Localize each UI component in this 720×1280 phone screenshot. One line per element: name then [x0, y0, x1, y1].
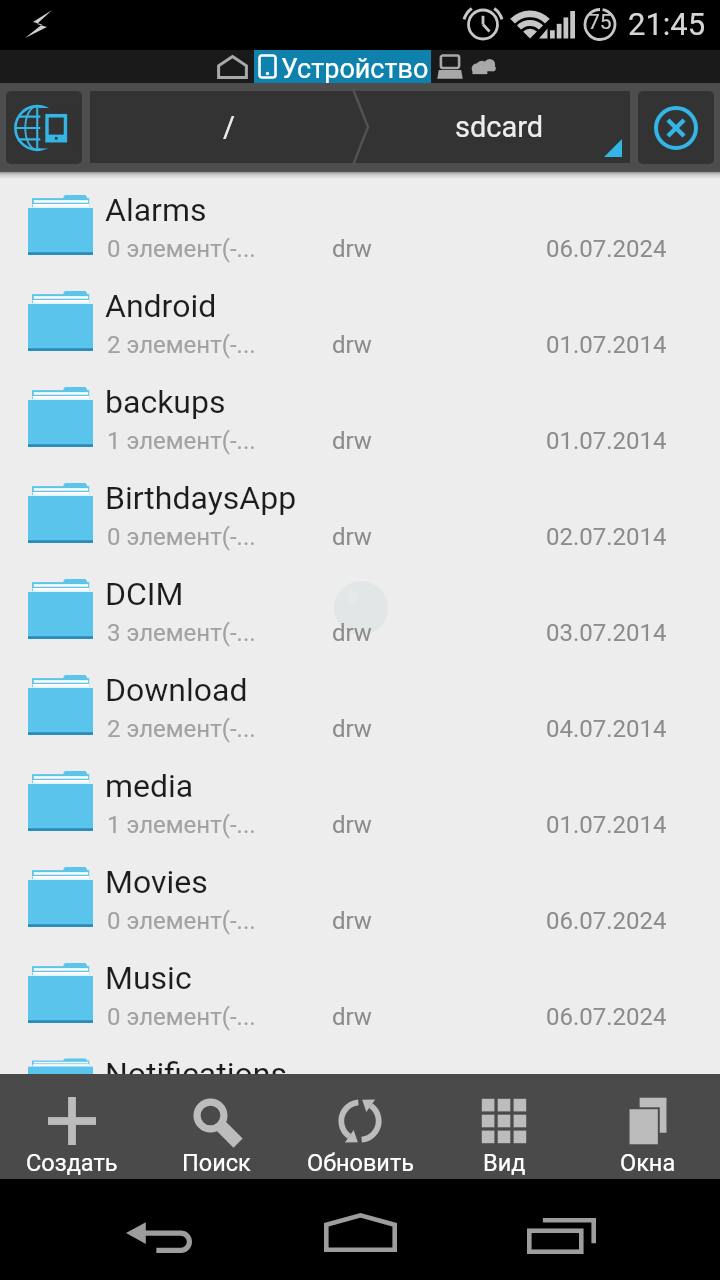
button[interactable]: /	[90, 91, 368, 163]
staticText: 2 элемент(-...	[107, 715, 256, 743]
staticText: 0 элемент(-...	[107, 1099, 256, 1127]
staticText: 0 элемент(-...	[107, 1003, 256, 1031]
staticText: drw	[332, 235, 372, 263]
staticText: 01.07.2014	[546, 331, 667, 359]
staticText: 1 элемент(-...	[107, 811, 256, 839]
staticText: Download	[105, 671, 248, 709]
staticText: Поиск	[182, 1149, 251, 1177]
staticText: sdcard	[455, 110, 544, 144]
staticText: DCIM	[105, 575, 184, 613]
staticText: /	[223, 110, 235, 144]
button[interactable]: Android	[0, 267, 720, 363]
button[interactable]: sdcard	[368, 91, 630, 163]
staticText: 75	[588, 10, 612, 35]
staticText: 0 элемент(-...	[107, 907, 256, 935]
staticText: Устройство	[281, 53, 429, 85]
button[interactable]: Back	[80, 1179, 240, 1280]
staticText: Вид	[483, 1149, 526, 1177]
button[interactable]: Обновить	[288, 1074, 432, 1179]
staticText: drw	[332, 715, 372, 743]
staticText: drw	[332, 523, 372, 551]
staticText: Alarms	[105, 191, 207, 229]
button[interactable]: Close tab	[638, 91, 714, 164]
staticText: 06.07.2024	[546, 1003, 667, 1031]
staticText: 04.07.2014	[546, 715, 667, 743]
staticText: drw	[332, 811, 372, 839]
staticText: 02.07.2014	[546, 523, 667, 551]
button[interactable]: media	[0, 747, 720, 843]
staticText: backups	[105, 383, 226, 421]
button[interactable]: Создать	[0, 1074, 144, 1179]
staticText: drw	[332, 907, 372, 935]
staticText: drw	[332, 427, 372, 455]
button[interactable]: Home	[280, 1179, 440, 1280]
staticText: 0 элемент(-...	[107, 235, 256, 263]
button[interactable]: Movies	[0, 843, 720, 939]
staticText: Обновить	[307, 1149, 414, 1177]
button[interactable]: Поиск	[144, 1074, 288, 1179]
staticText: Notifications	[105, 1055, 287, 1093]
staticText: drw	[332, 1003, 372, 1031]
button[interactable]: Storage root	[6, 91, 82, 164]
staticText: 01.07.2014	[546, 427, 667, 455]
button[interactable]: Alarms	[0, 171, 720, 267]
button[interactable]: Устройство	[254, 50, 431, 83]
staticText: drw	[332, 619, 372, 647]
button[interactable]: Окна	[576, 1074, 720, 1179]
button[interactable]: backups	[0, 363, 720, 459]
staticText: Music	[105, 959, 192, 997]
staticText: drw	[332, 331, 372, 359]
staticText: 3 элемент(-...	[107, 619, 256, 647]
button[interactable]: Home folder	[211, 50, 253, 83]
staticText: Movies	[105, 863, 208, 901]
staticText: Окна	[620, 1149, 676, 1177]
button[interactable]: Recent apps	[480, 1179, 640, 1280]
button[interactable]: Вид	[432, 1074, 576, 1179]
button[interactable]: Cloud storage	[469, 50, 497, 83]
staticText: 06.07.2024	[546, 907, 667, 935]
staticText: 21:45	[628, 6, 706, 42]
staticText: BirthdaysApp	[105, 479, 297, 517]
staticText: 01.07.2014	[546, 811, 667, 839]
staticText: 03.07.2014	[546, 619, 667, 647]
staticText: 2 элемент(-...	[107, 331, 256, 359]
button[interactable]: Download	[0, 651, 720, 747]
button[interactable]: Computer	[433, 50, 467, 83]
staticText: drw	[332, 1099, 372, 1127]
staticText: Создать	[26, 1149, 118, 1177]
button[interactable]: Music	[0, 939, 720, 1035]
staticText: 1 элемент(-...	[107, 427, 256, 455]
button[interactable]: Notifications	[0, 1035, 720, 1074]
staticText: 06.07.2024	[546, 235, 667, 263]
staticText: media	[105, 767, 194, 805]
button[interactable]: DCIM	[0, 555, 720, 651]
staticText: 06.07.2024	[546, 1099, 667, 1127]
staticText: Android	[105, 287, 217, 325]
button[interactable]: BirthdaysApp	[0, 459, 720, 555]
staticText: 0 элемент(-...	[107, 523, 256, 551]
